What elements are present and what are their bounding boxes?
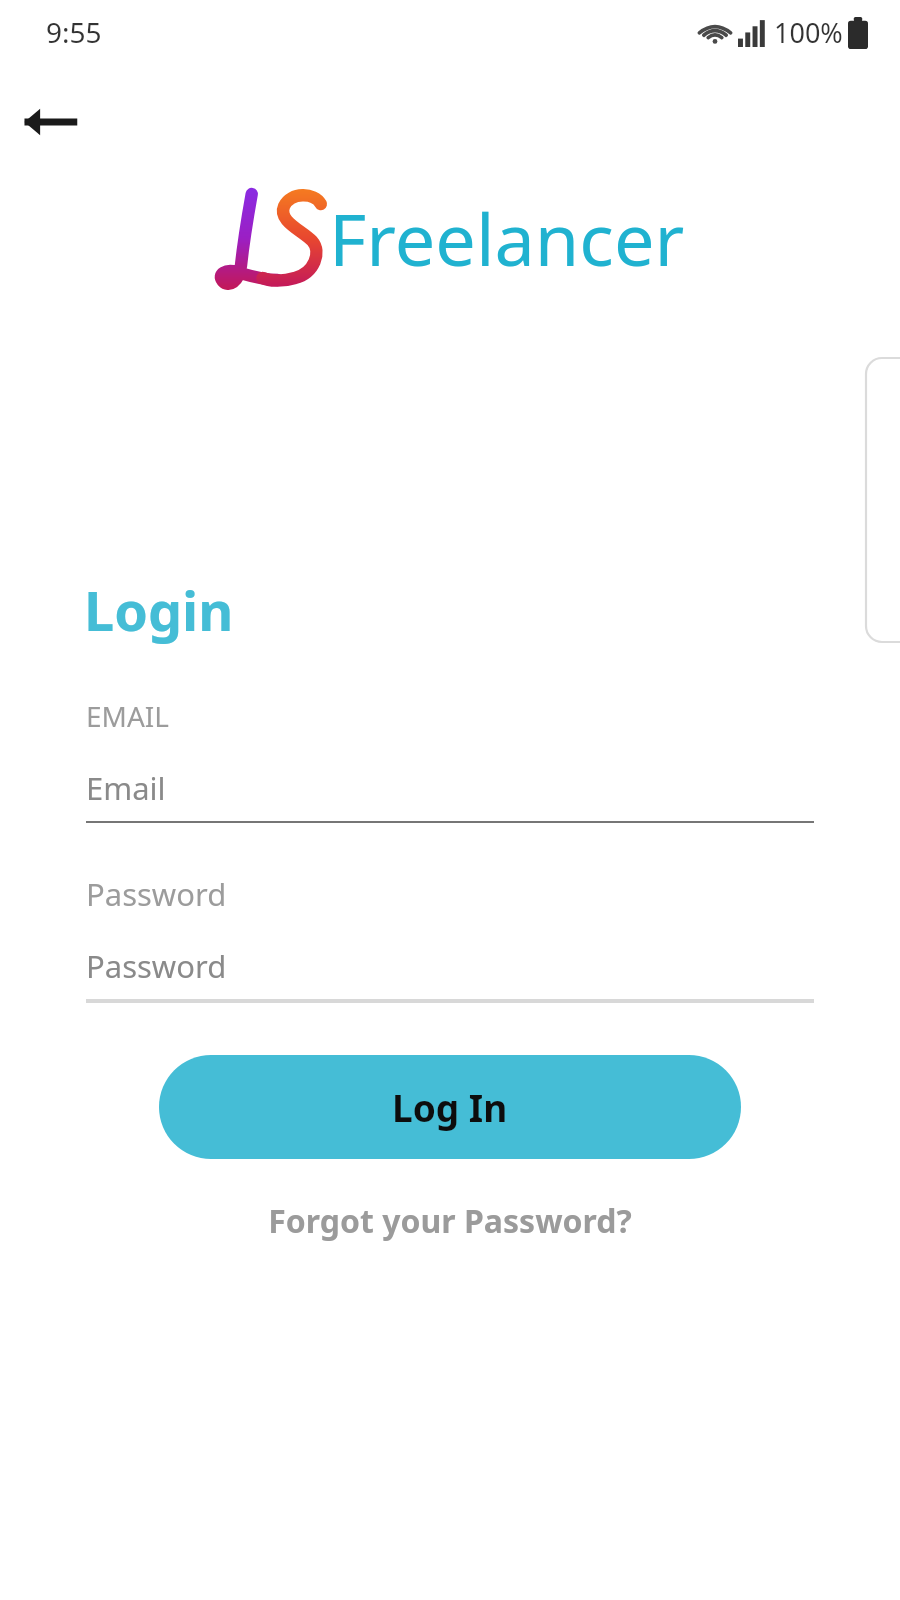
button[interactable]: Email	[86, 767, 814, 823]
button[interactable]: Log In	[159, 1055, 741, 1159]
button[interactable]: Forgot your Password?	[244, 1187, 656, 1255]
button[interactable]: Password	[86, 945, 814, 1003]
staticText: Freelancer	[329, 189, 685, 287]
staticText: Password	[86, 945, 227, 987]
staticText: Login	[84, 573, 234, 647]
staticText: Forgot your Password?	[268, 1199, 632, 1243]
staticText: Log In	[392, 1082, 508, 1132]
staticText: Email	[86, 767, 166, 809]
staticText: EMAIL	[86, 697, 170, 735]
staticText: Password	[86, 873, 227, 915]
staticText: 100%	[774, 14, 843, 51]
staticText: 9:55	[46, 13, 102, 51]
button[interactable]: Back	[12, 84, 88, 160]
